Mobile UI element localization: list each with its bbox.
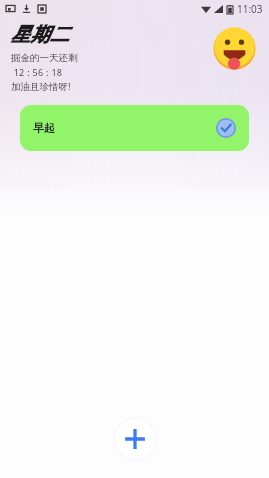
staticText: 加油且珍惜呀! xyxy=(11,80,71,93)
staticText: 12 : 56 : 18 xyxy=(11,66,63,78)
button[interactable]: Add task xyxy=(113,417,157,461)
staticText: 早起 xyxy=(33,121,55,135)
staticText: 11:03 xyxy=(237,2,263,16)
button[interactable]: Mood emoji xyxy=(212,26,257,71)
staticText: 星期二 xyxy=(11,23,70,47)
staticText: 掘金的一天还剩 xyxy=(11,52,78,64)
button[interactable]: 早起 xyxy=(20,105,249,151)
button[interactable]: Mark done xyxy=(216,118,236,138)
